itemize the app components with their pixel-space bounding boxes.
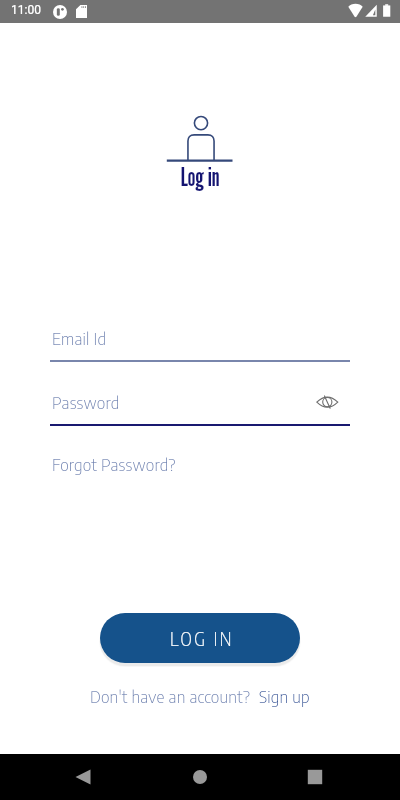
staticText: Log in xyxy=(180,162,220,192)
button[interactable]: Recent apps xyxy=(292,754,338,800)
staticText: Password xyxy=(52,391,120,412)
button[interactable]: Sign up xyxy=(259,685,310,706)
button[interactable]: LOG IN xyxy=(100,613,300,663)
staticText: Sign up xyxy=(259,685,310,706)
button[interactable]: Home xyxy=(177,754,223,800)
staticText: Don't have an account? xyxy=(90,685,251,706)
button[interactable]: Back xyxy=(60,754,106,800)
button[interactable]: Forgot Password? xyxy=(50,450,174,471)
staticText: Email Id xyxy=(52,327,107,348)
button[interactable]: Show password xyxy=(313,388,341,416)
staticText: 11:00 xyxy=(11,3,41,17)
staticText: LOG IN xyxy=(170,628,234,650)
staticText: Forgot Password? xyxy=(52,453,176,474)
